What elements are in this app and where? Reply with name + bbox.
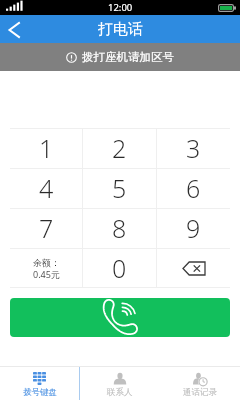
button[interactable]: 余额： [10,249,82,288]
staticText: 2 [112,131,127,165]
staticText: 通话记录 [183,387,217,398]
button[interactable]: 7 [10,209,82,248]
button[interactable]: 8 [83,209,156,248]
staticText: 5 [112,171,127,205]
button[interactable]: 9 [157,209,230,248]
staticText: 4 [39,171,54,205]
staticText: 8 [112,211,127,245]
button[interactable]: Call [10,298,230,337]
button[interactable]: Delete [157,249,230,288]
staticText: 3 [186,131,201,165]
staticText: 余额： [33,257,60,268]
button[interactable]: 拨号键盘 [0,367,79,400]
button[interactable]: 5 [83,169,156,208]
staticText: 12:00 [108,1,133,14]
button[interactable]: 6 [157,169,230,208]
staticText: 6 [186,171,201,205]
button[interactable]: 通话记录 [160,367,240,400]
button[interactable]: 3 [157,129,230,168]
staticText: 0.45元 [33,268,60,280]
button[interactable]: 2 [83,129,156,168]
button[interactable]: Back [0,15,30,43]
staticText: 7 [39,211,54,245]
staticText: 拨打座机请加区号 [82,50,174,64]
staticText: 拨号键盘 [23,387,57,398]
staticText: 1 [39,131,54,165]
staticText: 打电话 [98,20,143,39]
button[interactable]: 1 [10,129,82,168]
staticText: 联系人 [107,387,133,398]
staticText: 0 [112,251,127,285]
button[interactable]: 联系人 [80,367,160,400]
button[interactable]: 0 [83,249,156,288]
button[interactable]: 4 [10,169,82,208]
staticText: 9 [186,211,201,245]
